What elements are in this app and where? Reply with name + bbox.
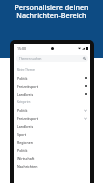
button[interactable]: Regionen [14, 138, 90, 146]
staticText: Landkreis [17, 92, 34, 97]
staticText: Landkreis [17, 124, 34, 129]
staticText: Politik [17, 108, 28, 113]
button[interactable]: Politik [14, 106, 90, 114]
staticText: Meine Themen [17, 68, 36, 72]
staticText: Nachrichten-Bereich [16, 10, 87, 20]
button[interactable]: Politik [14, 146, 90, 154]
other: Suchen [83, 57, 86, 60]
staticText: Wirtschaft [17, 156, 35, 161]
button[interactable]: Politik [14, 74, 90, 82]
staticText: Freizeitsport [17, 84, 39, 89]
staticText: Regionen [17, 140, 33, 145]
button[interactable]: Freizeitsport [14, 82, 90, 90]
button[interactable]: Wirtschaft [14, 154, 90, 162]
button[interactable]: Landkreis [14, 122, 90, 130]
staticText: Politik [17, 148, 28, 153]
button[interactable]: Nachrichten [14, 162, 90, 170]
staticText: Themen suchen [19, 57, 42, 61]
button[interactable]: Freizeitsport [14, 114, 90, 122]
staticText: Personalisiere deinen [14, 2, 89, 12]
staticText: Politik [17, 76, 28, 81]
staticText: Nachrichten [17, 164, 38, 169]
staticText: Kategorien [17, 100, 31, 104]
staticText: 15:00 [17, 46, 26, 51]
button[interactable]: Themen suchen [16, 55, 88, 62]
button[interactable]: Sport [14, 130, 90, 138]
staticText: Freizeitsport [17, 116, 39, 121]
button[interactable]: Landkreis [14, 90, 90, 98]
staticText: Sport [17, 132, 27, 137]
